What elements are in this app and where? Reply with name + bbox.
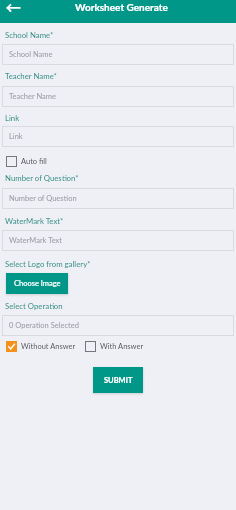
staticText: Auto fill bbox=[21, 157, 47, 166]
button[interactable]: Auto fill bbox=[6, 156, 47, 167]
staticText: WaterMark Text* bbox=[5, 216, 64, 225]
staticText: SUBMIT bbox=[104, 376, 133, 385]
staticText: Select Logo from gallery* bbox=[5, 259, 91, 268]
staticText: Select Operation bbox=[5, 301, 63, 310]
button[interactable]: SUBMIT bbox=[93, 367, 143, 393]
staticText: Without Answer bbox=[21, 342, 76, 351]
button[interactable]: WaterMark Text bbox=[2, 230, 234, 251]
staticText: Teacher Name bbox=[9, 92, 56, 101]
staticText: School Name bbox=[9, 50, 53, 59]
staticText: School Name* bbox=[5, 30, 54, 39]
staticText: WaterMark Text bbox=[9, 236, 62, 245]
staticText: Teacher Name* bbox=[5, 71, 57, 80]
button[interactable]: School Name bbox=[2, 44, 234, 65]
button[interactable]: Without Answer bbox=[6, 341, 76, 352]
button[interactable]: Back bbox=[2, 0, 18, 16]
staticText: Link bbox=[9, 132, 23, 141]
staticText: Number of Question bbox=[9, 194, 77, 203]
staticText: With Answer bbox=[100, 342, 144, 351]
button[interactable]: 0 Operation Selected bbox=[2, 315, 234, 336]
staticText: Worksheet Generate bbox=[75, 1, 168, 13]
staticText: Choose Image bbox=[14, 279, 61, 288]
button[interactable]: Teacher Name bbox=[2, 86, 234, 107]
button[interactable]: Choose Image bbox=[6, 273, 68, 294]
button[interactable]: Link bbox=[2, 126, 234, 147]
staticText: Number of Question* bbox=[5, 173, 79, 182]
staticText: 0 Operation Selected bbox=[9, 321, 79, 330]
staticText: Link bbox=[5, 113, 20, 122]
button[interactable]: Number of Question bbox=[2, 188, 234, 209]
button[interactable]: With Answer bbox=[85, 341, 144, 352]
